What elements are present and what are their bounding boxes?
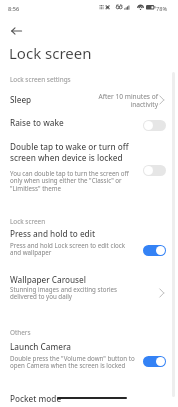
button[interactable]: Double tap to wake or turn off screen wh… bbox=[0, 139, 178, 195]
staticText: Sleep bbox=[10, 94, 32, 105]
staticText: Press and hold Lock screen to edit clock… bbox=[10, 241, 136, 257]
button[interactable]: Wallpaper Carousel bbox=[0, 272, 178, 306]
staticText: 78% bbox=[156, 5, 168, 13]
staticText: Others bbox=[10, 328, 31, 337]
button[interactable]: Launch Camera bbox=[0, 339, 178, 373]
button[interactable]: Turn on bbox=[143, 165, 166, 176]
staticText: Lock screen bbox=[9, 43, 92, 63]
button[interactable]: Raise to wake bbox=[0, 113, 178, 131]
staticText: After 10 minutes of inactivity bbox=[90, 92, 158, 109]
staticText: Stunning images and exciting stories del… bbox=[10, 285, 136, 301]
staticText: Double tap to wake or turn off screen wh… bbox=[10, 141, 136, 163]
staticText: 8:56 bbox=[8, 5, 20, 13]
staticText: Wallpaper Carousel bbox=[10, 274, 86, 285]
staticText: Press and hold to edit bbox=[10, 228, 96, 239]
button[interactable]: Turn off bbox=[143, 245, 166, 256]
button[interactable]: Turn on bbox=[143, 120, 166, 131]
staticText: Lock screen bbox=[10, 217, 46, 226]
staticText: Double press the "Volume down" button to… bbox=[10, 354, 136, 370]
staticText: Lock screen settings bbox=[10, 75, 71, 84]
button[interactable]: Sleep bbox=[0, 90, 178, 110]
button[interactable]: Pocket mode bbox=[0, 389, 178, 407]
staticText: Pocket mode bbox=[10, 393, 62, 404]
button[interactable]: Press and hold to edit bbox=[0, 226, 178, 260]
button[interactable]: Back bbox=[6, 20, 27, 41]
staticText: Launch Camera bbox=[10, 341, 71, 352]
staticText: You can double tap to turn the screen of… bbox=[10, 169, 136, 193]
button[interactable]: Turn off bbox=[143, 356, 166, 367]
staticText: Raise to wake bbox=[10, 117, 64, 128]
